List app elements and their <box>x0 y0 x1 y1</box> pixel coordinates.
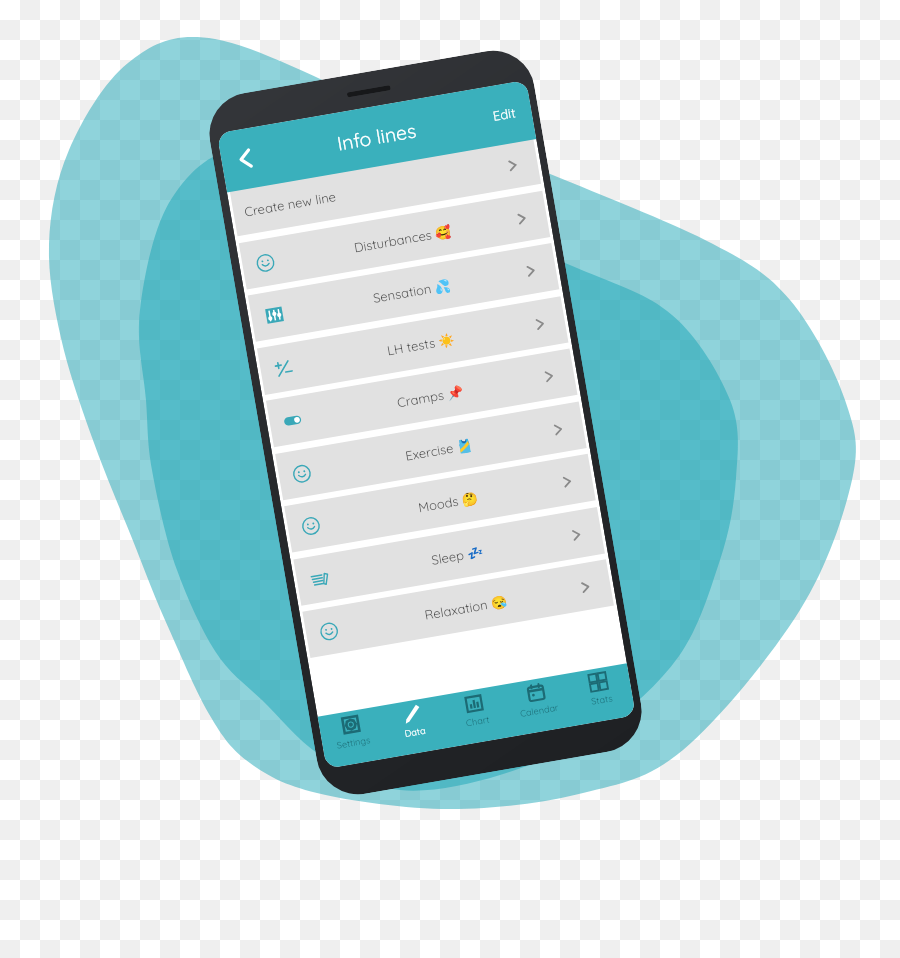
button[interactable]: Edit <box>487 100 521 128</box>
staticText: Edit <box>491 104 517 124</box>
button[interactable]: Stats <box>565 663 636 726</box>
staticText: Relaxation 😪 <box>423 593 509 623</box>
staticText: LH tests ☀️ <box>386 331 456 358</box>
staticText: Sensation 💦 <box>372 277 452 306</box>
staticText: Calendar <box>519 702 559 719</box>
button[interactable]: Cramps 📌 <box>266 348 577 447</box>
button[interactable]: Sleep 💤 <box>293 507 605 606</box>
staticText: Cramps 📌 <box>396 383 464 410</box>
button[interactable]: Relaxation 😪 <box>302 559 614 658</box>
button[interactable]: Exercise 🎽 <box>275 402 587 500</box>
staticText: Info lines <box>335 117 418 155</box>
staticText: Sleep 💤 <box>430 543 485 568</box>
button[interactable]: Moods 🤔 <box>284 454 596 552</box>
staticText: Moods 🤔 <box>417 489 480 515</box>
button[interactable]: Back <box>229 143 262 175</box>
staticText: Chart <box>465 713 490 728</box>
button[interactable]: Create new line <box>230 137 541 236</box>
button[interactable]: Data <box>379 695 450 758</box>
staticText: Create new line <box>243 188 337 220</box>
button[interactable]: Chart <box>441 685 512 748</box>
staticText: Settings <box>336 734 371 751</box>
staticText: Disturbances 🥰 <box>353 223 453 255</box>
button[interactable]: Settings <box>317 706 388 769</box>
staticText: Data <box>404 725 426 739</box>
button[interactable]: Calendar <box>503 674 574 737</box>
staticText: Exercise 🎽 <box>404 436 475 464</box>
button[interactable]: Sensation 💦 <box>248 243 559 342</box>
staticText: Stats <box>590 692 614 707</box>
button[interactable]: LH tests ☀️ <box>257 296 568 395</box>
button[interactable]: Disturbances 🥰 <box>239 191 550 289</box>
